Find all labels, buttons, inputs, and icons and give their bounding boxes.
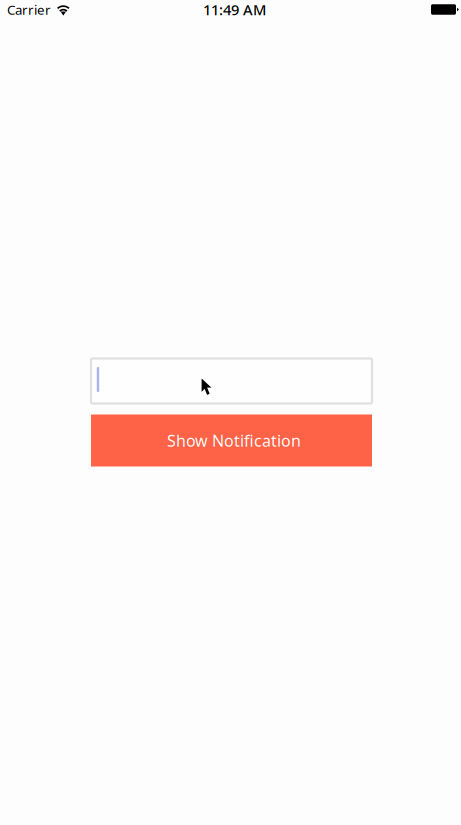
button[interactable]: Notification message text field	[91, 358, 372, 403]
button[interactable]: Show Notification	[91, 414, 372, 466]
staticText: Show Notification	[167, 430, 301, 451]
staticText: 11:49 AM	[203, 0, 266, 19]
staticText: Carrier	[7, 1, 51, 18]
